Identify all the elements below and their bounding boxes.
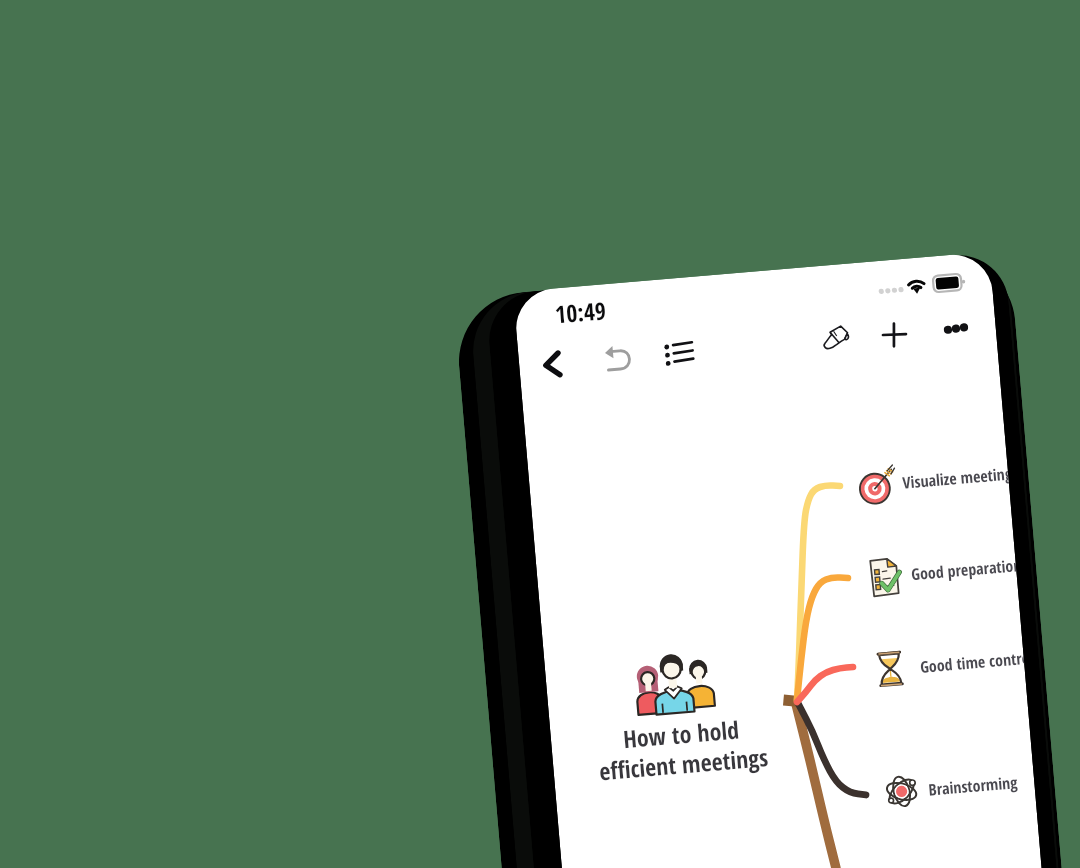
button[interactable]: Add — [879, 319, 911, 353]
button[interactable]: Good time control — [876, 639, 1025, 688]
button[interactable]: Good preparation — [867, 545, 1018, 598]
button[interactable]: More options — [941, 315, 973, 344]
staticText: 10:49 — [554, 293, 607, 330]
button[interactable]: Outline — [660, 336, 702, 374]
staticText: Visualize meetings — [902, 463, 1009, 494]
staticText: Good time control — [919, 647, 1025, 678]
button[interactable]: Visualize meetings — [858, 456, 1010, 504]
button[interactable]: Undo — [600, 342, 638, 379]
staticText: Good preparation — [910, 554, 1017, 585]
staticText: How to hold efficient meetings — [595, 710, 770, 787]
button[interactable]: Brainstorming — [884, 760, 1036, 813]
button[interactable]: Theme — [817, 322, 850, 358]
button[interactable]: How to hold efficient meetings — [554, 636, 806, 805]
staticText: Brainstorming — [928, 771, 1019, 801]
button[interactable]: Back — [531, 341, 577, 390]
